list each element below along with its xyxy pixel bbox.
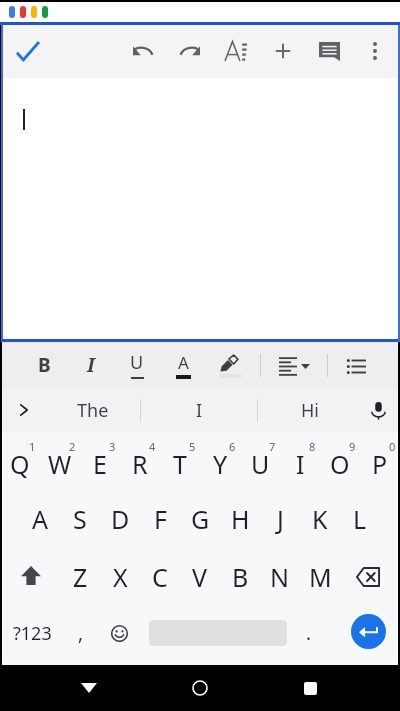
staticText: N — [270, 560, 290, 594]
button[interactable]: Voice input — [356, 388, 400, 432]
button[interactable]: Bulleted list — [335, 345, 377, 387]
staticText: 3 — [109, 439, 116, 454]
button[interactable]: I — [280, 438, 320, 490]
button[interactable]: Emoji — [100, 607, 138, 659]
staticText: E — [93, 447, 107, 481]
button[interactable]: Symbols — [2, 607, 62, 659]
button[interactable]: I — [141, 388, 257, 432]
button[interactable]: More options — [355, 31, 395, 71]
button[interactable]: Comma — [62, 607, 100, 659]
button[interactable]: L — [340, 493, 380, 545]
staticText: P — [372, 447, 388, 481]
staticText: V — [192, 560, 208, 594]
button[interactable]: Q — [0, 438, 40, 490]
button[interactable]: Highlight color — [208, 343, 250, 385]
button[interactable]: Period — [290, 607, 328, 659]
staticText: Hi — [301, 398, 319, 423]
staticText: F — [154, 502, 167, 536]
staticText: I — [196, 398, 203, 423]
button[interactable]: Text color — [162, 343, 204, 385]
staticText: 6 — [229, 439, 236, 454]
button[interactable]: Y — [200, 438, 240, 490]
staticText: The — [77, 398, 109, 423]
staticText: B — [232, 560, 249, 594]
staticText: T — [173, 447, 187, 481]
button[interactable]: Comments — [309, 31, 349, 71]
button[interactable]: M — [300, 551, 340, 603]
staticText: , — [78, 620, 84, 646]
button[interactable]: X — [100, 551, 140, 603]
staticText: C — [152, 560, 168, 594]
button[interactable]: Undo — [123, 31, 163, 71]
button[interactable]: Done — [8, 31, 48, 71]
staticText: K — [312, 502, 328, 536]
button[interactable]: S — [60, 493, 100, 545]
staticText: Z — [73, 560, 88, 594]
staticText: O — [330, 447, 350, 481]
staticText: 1 — [29, 439, 36, 454]
button[interactable]: Italic — [70, 344, 112, 386]
button[interactable]: Back — [64, 665, 114, 711]
staticText: X — [113, 560, 128, 594]
button[interactable]: U — [240, 438, 280, 490]
button[interactable]: Home — [175, 665, 225, 711]
staticText: 7 — [269, 439, 276, 454]
button[interactable]: Recent apps — [285, 665, 335, 711]
button[interactable]: V — [180, 551, 220, 603]
button[interactable]: J — [260, 493, 300, 545]
staticText: 2 — [69, 439, 76, 454]
button[interactable]: E — [80, 438, 120, 490]
button[interactable]: Bold — [23, 344, 65, 386]
button[interactable]: Enter — [351, 614, 386, 649]
staticText: Y — [213, 447, 228, 481]
button[interactable]: A — [20, 493, 60, 545]
button[interactable]: The — [46, 388, 140, 432]
button[interactable]: Redo — [170, 31, 210, 71]
button[interactable]: K — [300, 493, 340, 545]
button[interactable]: H — [220, 493, 260, 545]
button[interactable]: N — [260, 551, 300, 603]
button[interactable]: Underline — [116, 342, 158, 384]
button[interactable]: Shift — [2, 549, 60, 601]
staticText: 8 — [309, 439, 316, 454]
staticText: H — [231, 502, 250, 536]
button[interactable]: C — [140, 551, 180, 603]
staticText: 9 — [349, 439, 356, 454]
staticText: B — [38, 352, 51, 378]
staticText: M — [309, 560, 332, 594]
button[interactable]: Text formatting — [216, 31, 256, 71]
staticText: S — [73, 502, 87, 536]
staticText: D — [111, 502, 130, 536]
staticText: U — [251, 447, 270, 481]
button[interactable]: Hi — [258, 388, 362, 432]
button[interactable]: B — [220, 551, 260, 603]
button[interactable]: Paragraph alignment — [273, 346, 317, 384]
button[interactable]: Insert — [263, 31, 303, 71]
button[interactable]: Backspace — [339, 551, 397, 603]
staticText: L — [353, 502, 367, 536]
staticText: . — [306, 620, 312, 646]
staticText: 0 — [389, 439, 396, 454]
button[interactable]: F — [140, 493, 180, 545]
staticText: R — [132, 447, 148, 481]
staticText: W — [48, 447, 72, 481]
staticText: ?123 — [13, 621, 52, 646]
button[interactable]: T — [160, 438, 200, 490]
button[interactable]: Expand toolbar — [2, 388, 46, 432]
staticText: 5 — [189, 439, 196, 454]
button[interactable]: D — [100, 493, 140, 545]
button[interactable]: G — [180, 493, 220, 545]
staticText: Q — [10, 447, 30, 481]
staticText: A — [32, 502, 48, 536]
button[interactable]: W — [40, 438, 80, 490]
staticText: I — [87, 352, 95, 378]
button[interactable]: P — [360, 438, 400, 490]
button[interactable]: Z — [60, 551, 100, 603]
staticText: G — [191, 502, 210, 536]
staticText: U — [130, 350, 144, 375]
button[interactable]: O — [320, 438, 360, 490]
staticText: I — [296, 447, 305, 481]
button[interactable]: R — [120, 438, 160, 490]
staticText: A — [178, 351, 189, 374]
